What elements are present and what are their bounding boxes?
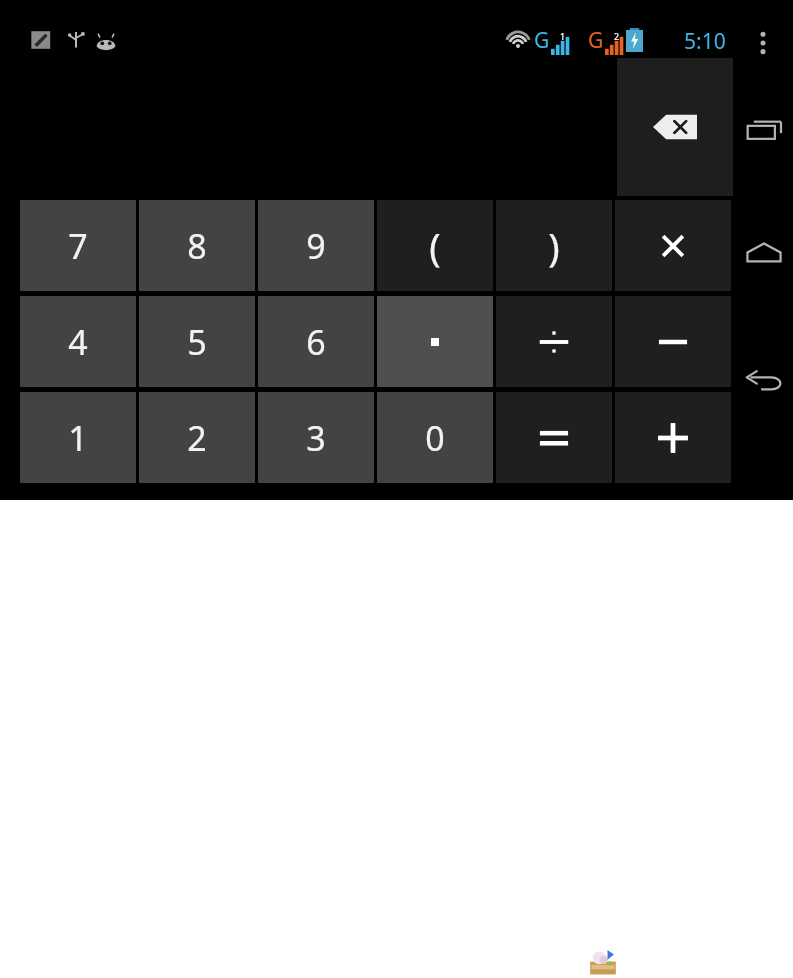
button[interactable]: Delete [617, 58, 733, 196]
button[interactable] [496, 392, 612, 483]
staticText: 2 [614, 30, 620, 42]
staticText: 7 [68, 223, 88, 269]
button[interactable]: 4 [20, 296, 136, 387]
button[interactable]: 0 [377, 392, 493, 483]
staticText: 5:10 [684, 27, 726, 56]
staticText: G [534, 26, 550, 55]
staticText: 0 [425, 415, 445, 461]
button[interactable]: 5 [139, 296, 255, 387]
staticText: 2 [187, 415, 207, 461]
button[interactable] [377, 296, 493, 387]
staticText: 1 [68, 415, 88, 461]
button[interactable] [615, 200, 731, 291]
button[interactable]: 3 [258, 392, 374, 483]
staticText: ( [429, 220, 441, 272]
button[interactable]: Home [741, 222, 787, 286]
staticText: 6 [306, 319, 326, 365]
staticText: G [588, 26, 604, 55]
button[interactable] [615, 392, 731, 483]
button[interactable]: ( [377, 200, 493, 291]
button[interactable]: 6 [258, 296, 374, 387]
button[interactable]: ) [496, 200, 612, 291]
staticText: 1 [560, 30, 566, 42]
button[interactable]: 2 [139, 392, 255, 483]
button[interactable]: 7 [20, 200, 136, 291]
staticText: 9 [306, 223, 326, 269]
button[interactable] [615, 296, 731, 387]
button[interactable]: More options [753, 28, 773, 58]
button[interactable]: 9 [258, 200, 374, 291]
button[interactable]: Recent apps [741, 98, 787, 162]
staticText: 3 [306, 415, 326, 461]
staticText: 8 [187, 223, 207, 269]
button[interactable] [496, 296, 612, 387]
staticText: 5 [187, 319, 207, 365]
staticText: 4 [68, 319, 88, 365]
staticText: ) [548, 220, 560, 272]
button[interactable]: App [585, 943, 621, 978]
button[interactable]: 1 [20, 392, 136, 483]
button[interactable]: Back [741, 348, 787, 412]
button[interactable]: 8 [139, 200, 255, 291]
